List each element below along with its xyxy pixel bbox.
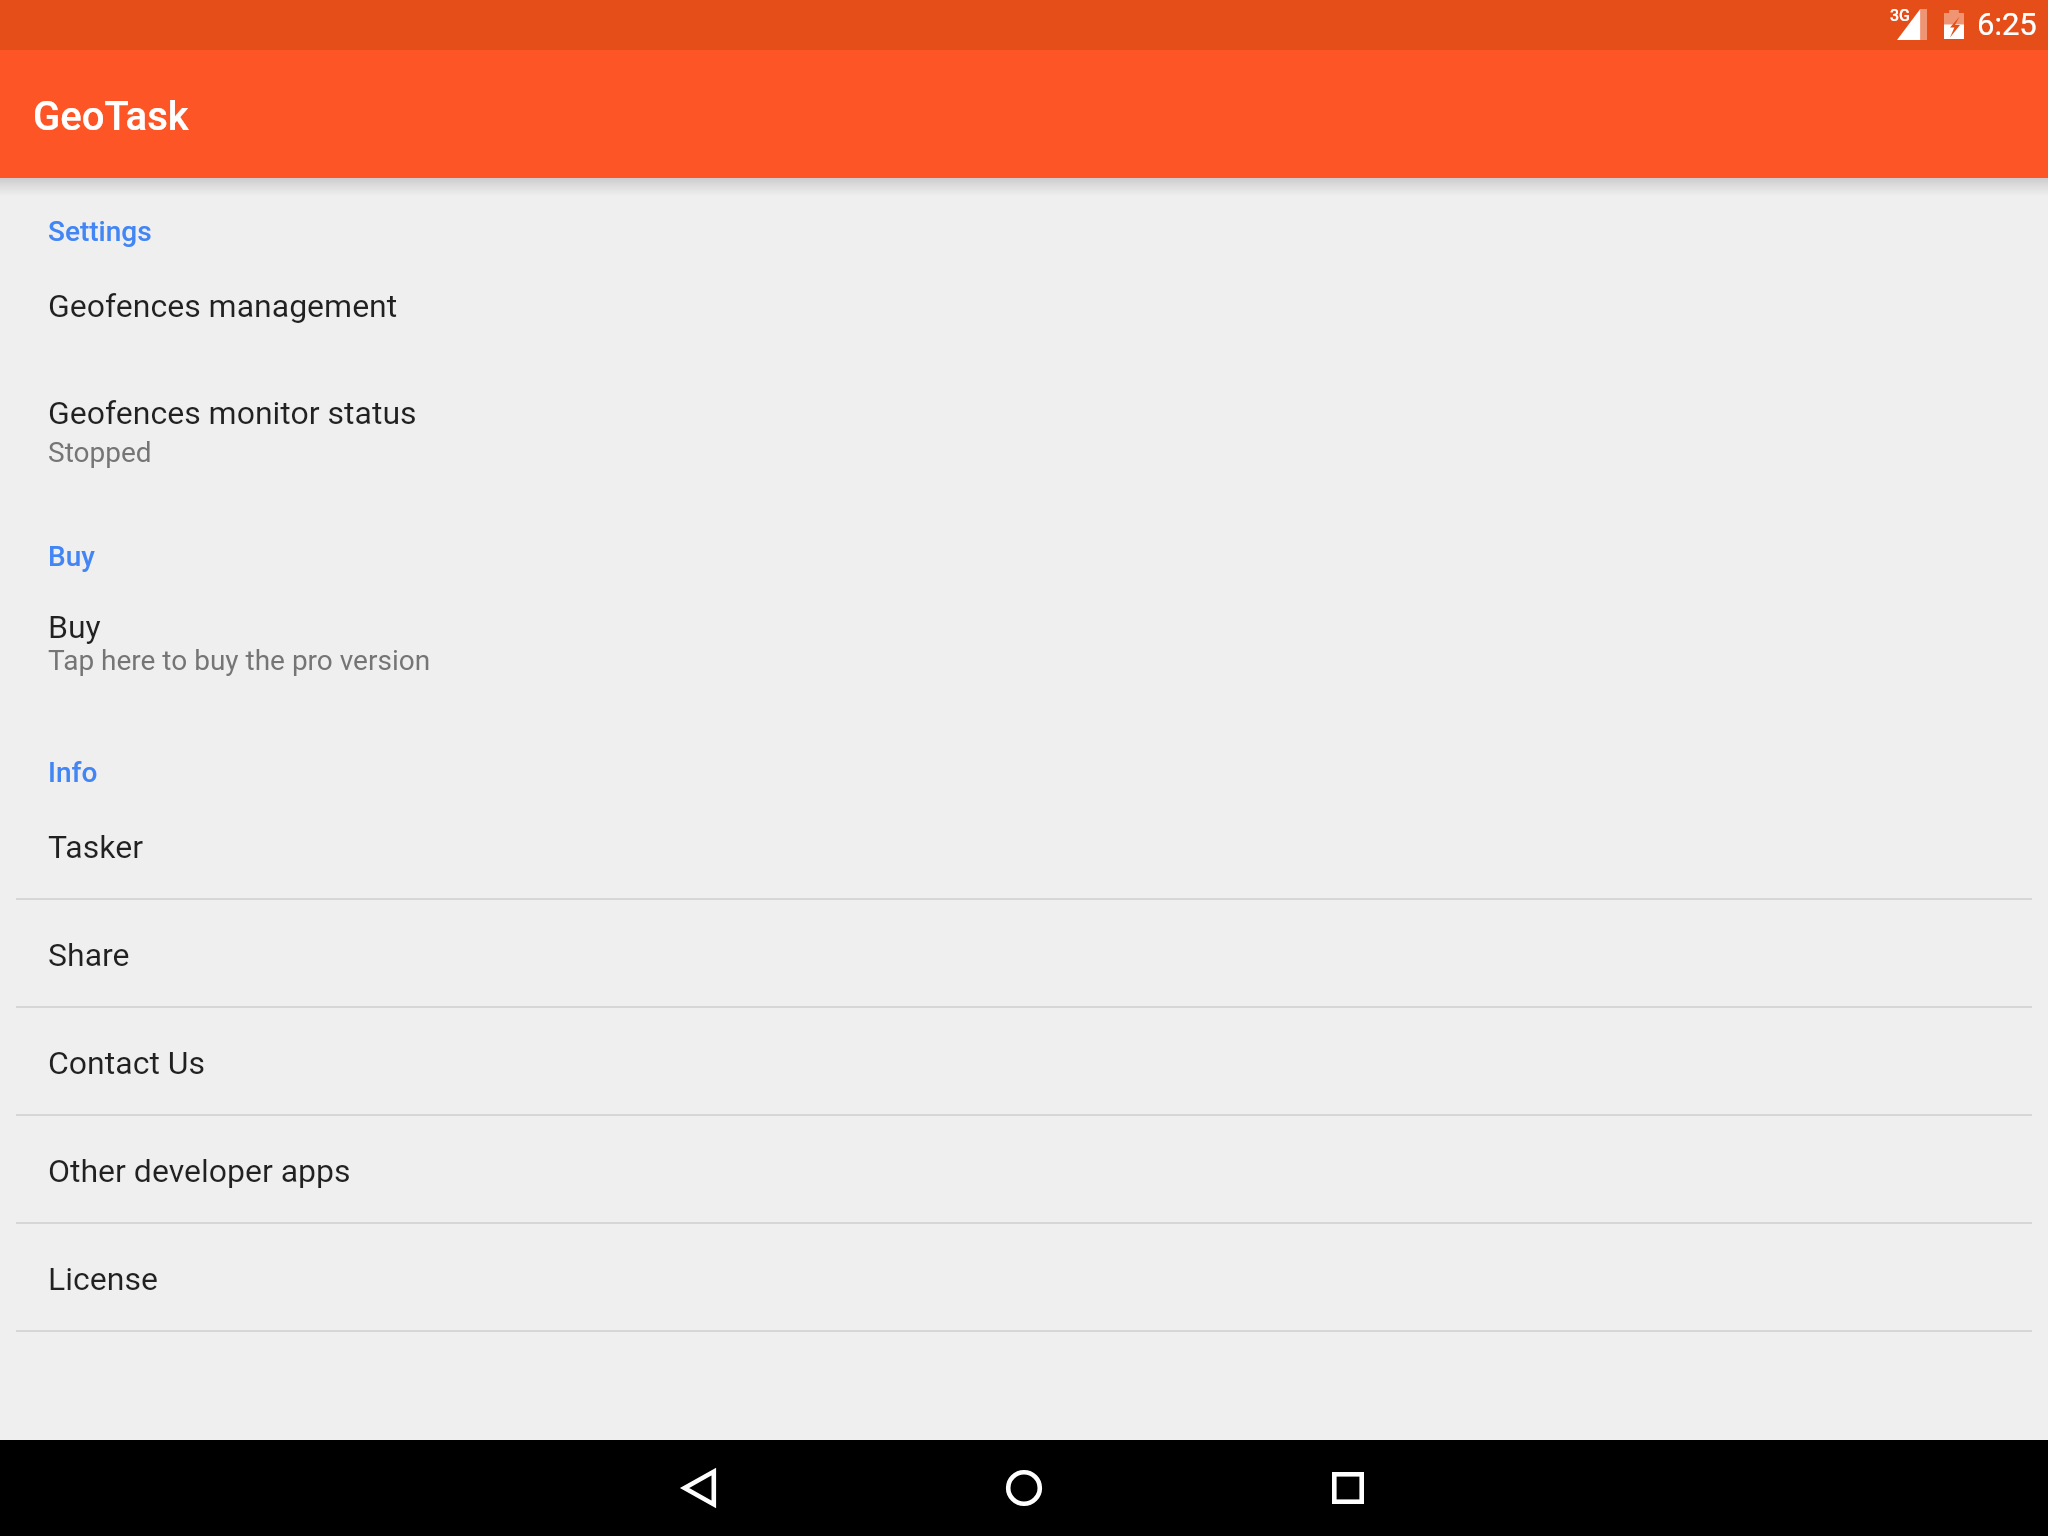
staticText: Buy bbox=[48, 608, 101, 646]
button[interactable]: Buy bbox=[0, 575, 2048, 717]
staticText: Share bbox=[48, 936, 130, 974]
button[interactable]: Geofences monitor status bbox=[0, 357, 2048, 500]
button[interactable]: Home bbox=[934, 1440, 1114, 1536]
button[interactable]: Tasker bbox=[0, 790, 2048, 898]
button[interactable]: Contact Us bbox=[0, 1006, 2048, 1114]
staticText: GeoTask bbox=[33, 93, 189, 140]
staticText: Other developer apps bbox=[48, 1152, 351, 1190]
staticText: Info bbox=[48, 756, 98, 789]
staticText: Contact Us bbox=[48, 1044, 206, 1082]
button[interactable]: Share bbox=[0, 898, 2048, 1006]
staticText: Tasker bbox=[48, 828, 143, 866]
staticText: Geofences monitor status bbox=[48, 394, 417, 432]
button[interactable]: Back bbox=[609, 1440, 789, 1536]
staticText: Stopped bbox=[48, 436, 152, 469]
button[interactable]: License bbox=[0, 1222, 2048, 1330]
staticText: Geofences management bbox=[48, 287, 398, 325]
staticText: 6:25 bbox=[1977, 6, 2037, 42]
staticText: Settings bbox=[48, 215, 152, 248]
button[interactable]: Other developer apps bbox=[0, 1114, 2048, 1222]
staticText: Tap here to buy the pro version bbox=[48, 644, 431, 677]
staticText: 3G bbox=[1890, 6, 1910, 25]
staticText: Buy bbox=[48, 540, 95, 573]
staticText: License bbox=[48, 1260, 158, 1298]
button[interactable]: Geofences management bbox=[0, 178, 2048, 357]
button[interactable]: Recent apps bbox=[1258, 1440, 1438, 1536]
